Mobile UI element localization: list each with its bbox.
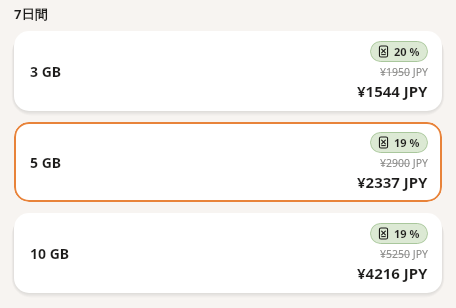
button[interactable]: 5 GB <box>14 122 442 202</box>
staticText: 7日間 <box>14 5 48 23</box>
other: Discount coupon <box>378 228 389 239</box>
staticText: ¥2337 JPY <box>357 172 428 192</box>
staticText: ¥5250 JPY <box>380 247 428 261</box>
staticText: 10 GB <box>30 244 70 263</box>
staticText: ¥4216 JPY <box>357 263 428 283</box>
staticText: ¥2900 JPY <box>380 156 428 170</box>
other: Discount coupon <box>378 46 389 57</box>
staticText: 5 GB <box>30 153 62 172</box>
staticText: 19 % <box>394 226 420 241</box>
staticText: 3 GB <box>30 62 62 81</box>
button[interactable]: 3 GB <box>14 31 442 111</box>
staticText: 20 % <box>394 44 420 59</box>
staticText: ¥1544 JPY <box>357 81 428 101</box>
button[interactable]: 10 GB <box>14 213 442 293</box>
staticText: ¥1950 JPY <box>380 65 428 79</box>
staticText: 19 % <box>394 135 420 150</box>
other: Discount coupon <box>378 137 389 148</box>
